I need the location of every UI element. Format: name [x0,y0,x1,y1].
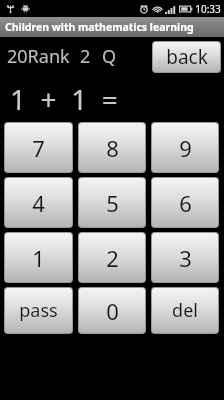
staticText: 3 [179,243,192,273]
staticText: 2 [106,243,119,273]
staticText: 20Rank [7,44,70,69]
button[interactable]: 6 [152,178,218,227]
button[interactable]: pass [5,288,72,333]
staticText: Children with mathematics learning [5,20,194,34]
button[interactable]: 0 [79,288,145,333]
button[interactable]: 2 [79,233,145,282]
button[interactable]: 8 [79,123,145,172]
staticText: 1 [32,243,45,273]
staticText: 8 [106,133,119,163]
staticText: 10:33 [195,2,221,16]
staticText: back [166,44,208,70]
staticText: 9 [179,133,192,163]
button[interactable]: 1 [5,233,72,282]
button[interactable]: 9 [152,123,218,172]
staticText: Q [102,44,117,69]
staticText: del [172,298,198,323]
button[interactable]: 4 [5,178,72,227]
staticText: 2 [80,44,91,69]
staticText: 0 [106,296,119,326]
button[interactable]: 7 [5,123,72,172]
staticText: 7 [32,133,45,163]
button[interactable]: del [152,288,218,333]
staticText: 1 + 1 = [10,80,118,118]
button[interactable]: 3 [152,233,218,282]
staticText: 4 [32,188,45,218]
staticText: pass [19,298,58,323]
staticText: 6 [179,188,192,218]
button[interactable]: 5 [79,178,145,227]
staticText: 5 [106,188,119,218]
button[interactable]: back [153,42,220,72]
